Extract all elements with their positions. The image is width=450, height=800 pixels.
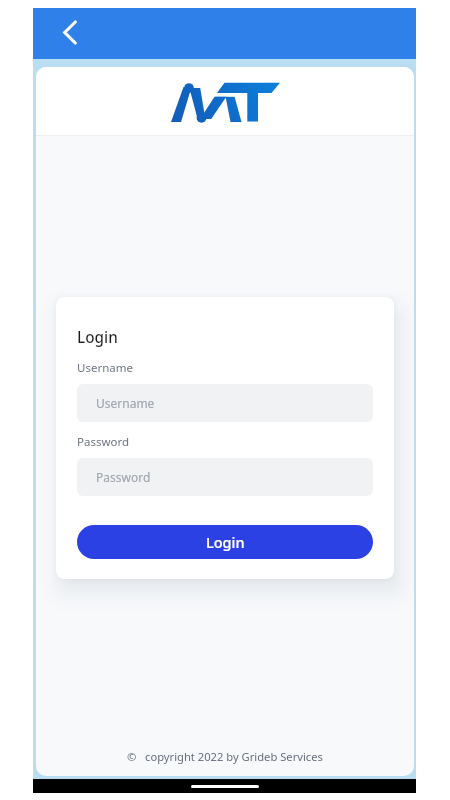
button[interactable]: Password: [77, 458, 373, 496]
staticText: Password: [77, 434, 130, 450]
button[interactable]: Back: [48, 10, 92, 54]
button[interactable]: Login: [77, 525, 373, 559]
staticText: Username: [96, 395, 155, 411]
staticText: Password: [96, 469, 151, 485]
staticText: Login: [206, 532, 245, 552]
staticText: Username: [77, 360, 133, 376]
staticText: © copyright 2022 by Grideb Services: [127, 749, 323, 764]
button[interactable]: Username: [77, 384, 373, 422]
staticText: Login: [77, 327, 118, 348]
